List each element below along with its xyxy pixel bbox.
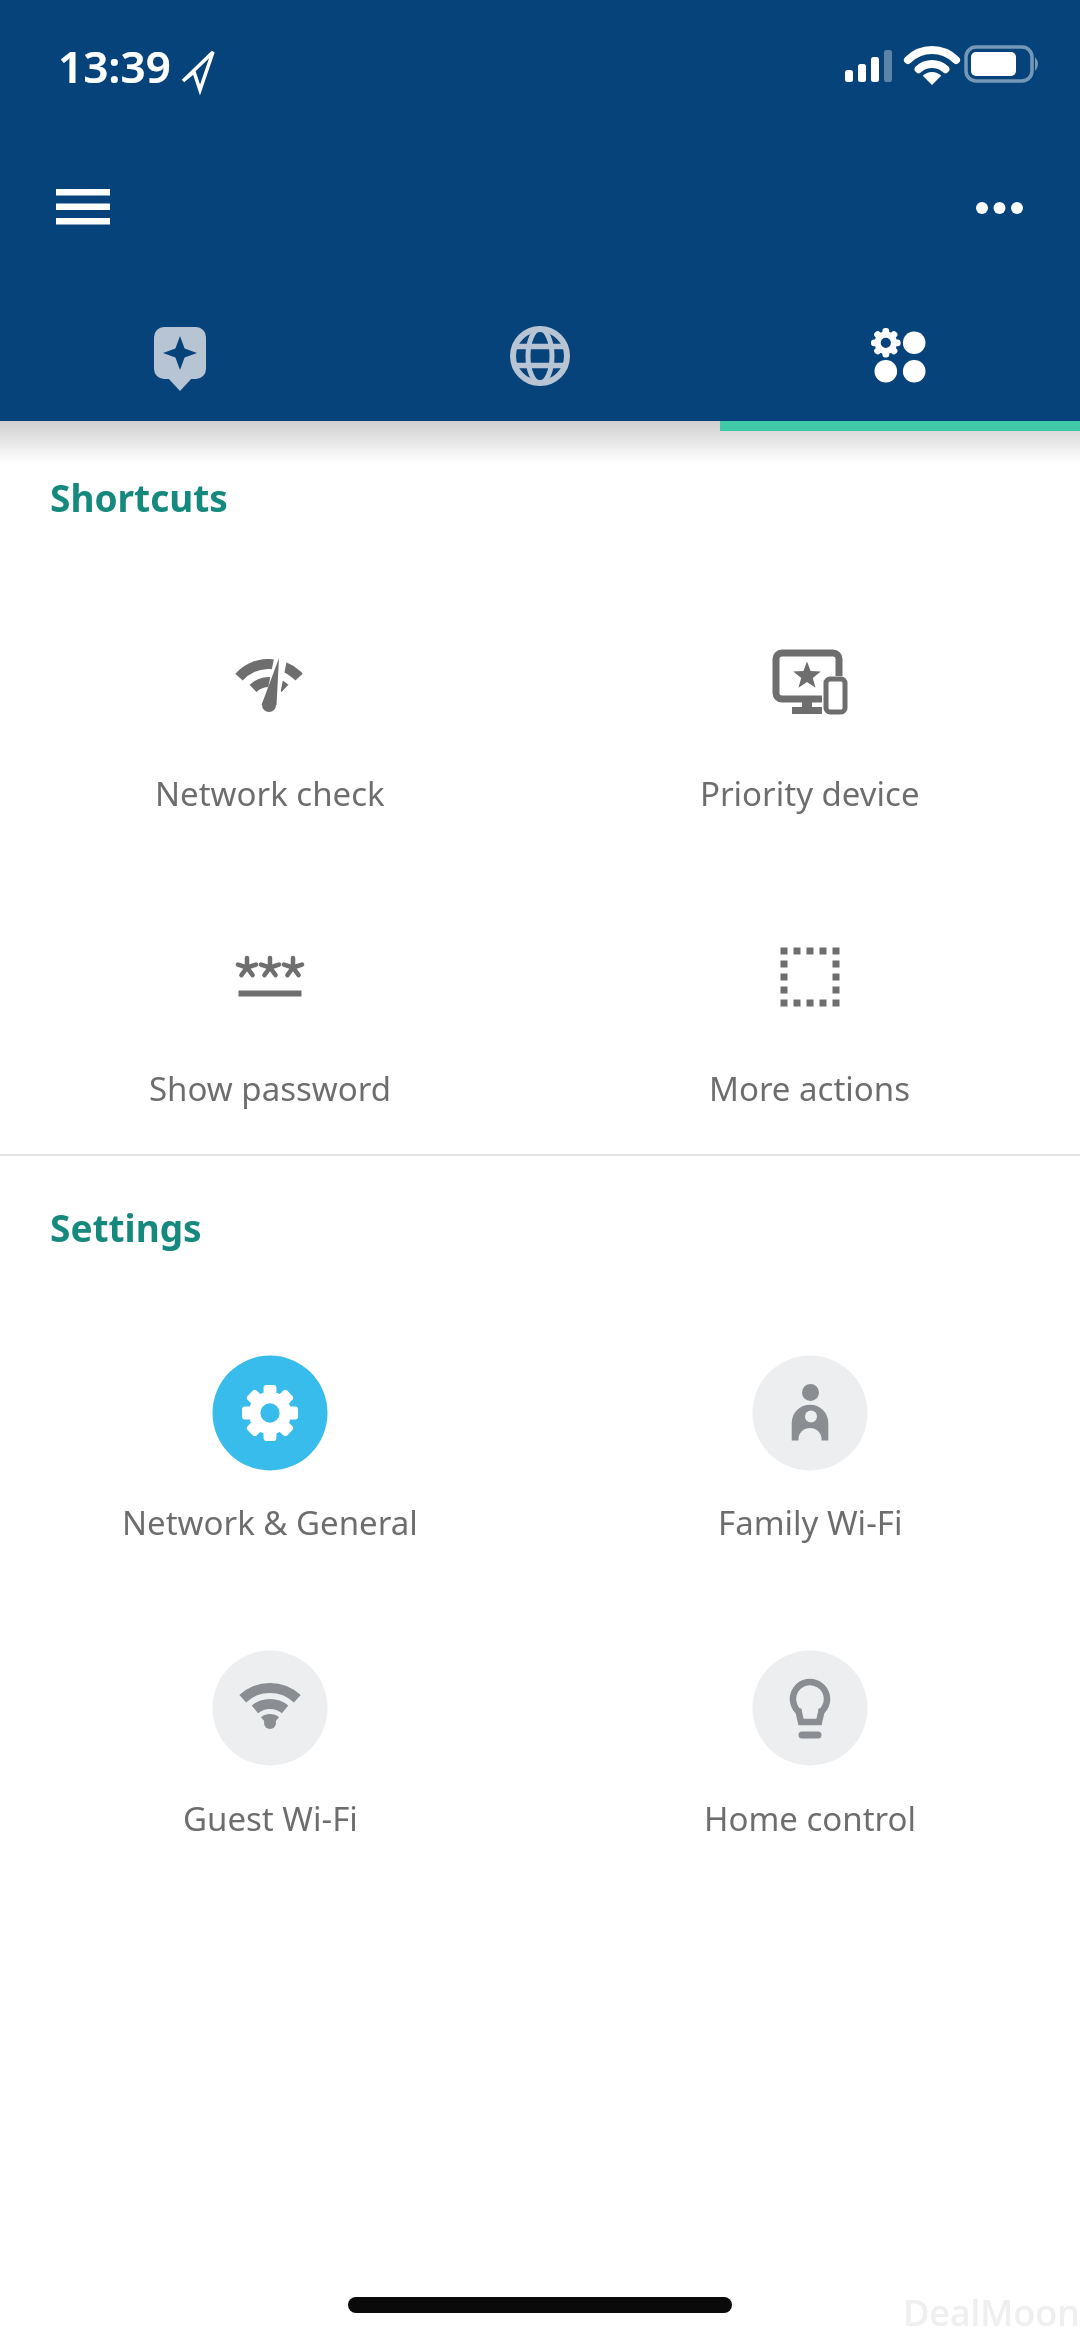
button[interactable]: Network check <box>0 560 540 860</box>
staticText: Shortcuts <box>50 472 228 522</box>
button[interactable] <box>0 301 360 421</box>
button[interactable]: More actions <box>540 900 1080 1150</box>
staticText: Show password <box>149 1066 391 1111</box>
button[interactable]: Show password <box>0 900 540 1150</box>
button[interactable]: Home control <box>540 1615 1080 1905</box>
button[interactable] <box>360 301 720 421</box>
button[interactable]: Priority device <box>540 560 1080 860</box>
staticText: Priority device <box>700 771 920 816</box>
button[interactable]: Network & General <box>0 1320 540 1610</box>
staticText: Guest Wi-Fi <box>183 1796 358 1841</box>
staticText: DealMoon <box>903 2288 1080 2337</box>
button[interactable] <box>30 162 135 252</box>
staticText: Home control <box>704 1796 917 1841</box>
button[interactable] <box>950 165 1050 250</box>
staticText: 13:39 <box>58 36 171 96</box>
staticText: Network & General <box>122 1500 418 1545</box>
staticText: More actions <box>709 1066 911 1111</box>
staticText: Network check <box>155 771 385 816</box>
button[interactable]: Family Wi-Fi <box>540 1320 1080 1610</box>
staticText: Family Wi-Fi <box>718 1500 903 1545</box>
button[interactable] <box>720 301 1080 421</box>
staticText: Settings <box>50 1202 202 1252</box>
button[interactable]: Guest Wi-Fi <box>0 1615 540 1905</box>
